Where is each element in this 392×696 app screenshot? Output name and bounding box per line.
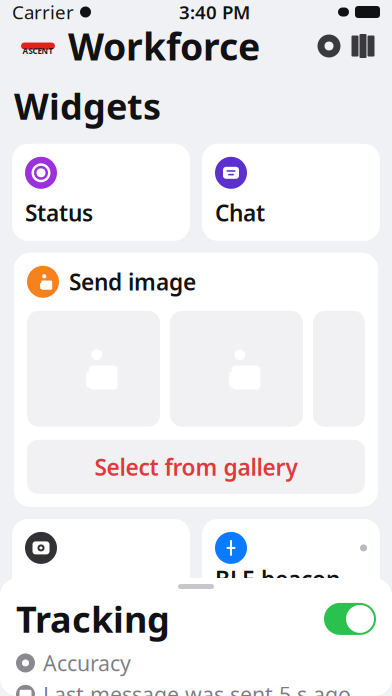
staticText: 3:40 PM xyxy=(179,0,250,24)
button[interactable]: Select from gallery xyxy=(27,440,365,494)
button[interactable]: BLE beacon xyxy=(202,519,380,616)
staticText: Widgets xyxy=(14,82,161,130)
staticText: ASCENT xyxy=(22,46,53,56)
staticText: Tracking xyxy=(16,595,170,643)
button[interactable]: Chat xyxy=(202,144,380,241)
button[interactable]: Status xyxy=(12,144,190,241)
button[interactable]: Map xyxy=(346,29,380,63)
staticText: BLE beacon xyxy=(215,564,340,594)
button[interactable]: Tracking toggle xyxy=(324,603,376,635)
staticText: Workforce xyxy=(68,21,260,71)
button[interactable]: Send photo xyxy=(12,519,190,616)
staticText: Select from gallery xyxy=(94,452,297,482)
staticText: Chat xyxy=(215,198,265,228)
button[interactable]: Send image xyxy=(14,253,378,507)
staticText: Accuracy xyxy=(43,649,131,677)
button[interactable]: Settings xyxy=(312,29,346,63)
staticText: Send image xyxy=(69,267,196,297)
staticText: Carrier xyxy=(12,0,74,24)
staticText: Last message was sent 5 s ago xyxy=(43,680,351,696)
staticText: Status xyxy=(25,198,93,228)
